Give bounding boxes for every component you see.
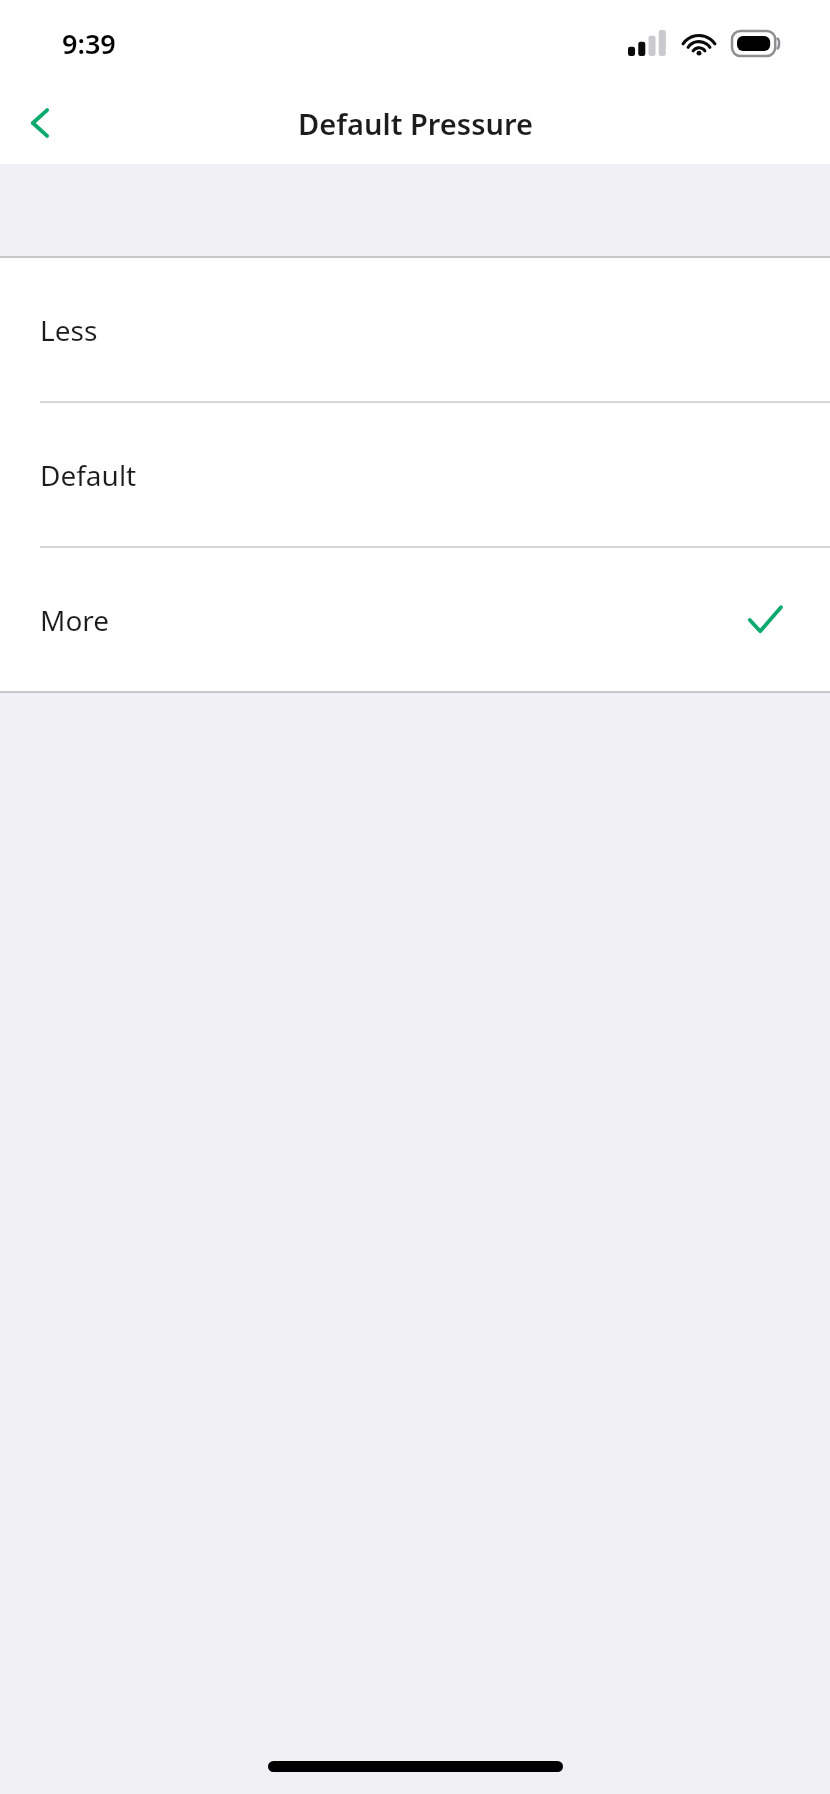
button[interactable]: Less <box>0 258 830 401</box>
button[interactable]: Back <box>0 82 82 164</box>
staticText: More <box>40 601 110 639</box>
staticText: Default <box>40 456 137 494</box>
button[interactable]: Default <box>0 403 830 546</box>
button[interactable]: More <box>0 548 830 691</box>
staticText: 9:39 <box>62 25 116 62</box>
staticText: Default Pressure <box>298 104 533 143</box>
staticText: Less <box>40 311 98 349</box>
